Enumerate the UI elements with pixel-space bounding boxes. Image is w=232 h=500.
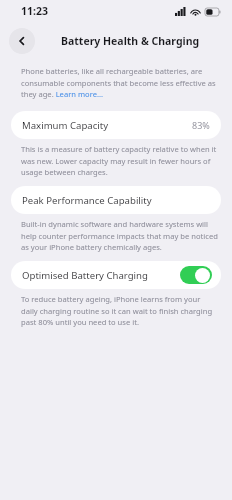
staticText: Phone batteries, like all rechargeable b… <box>21 66 218 99</box>
staticText: Maximum Capacity <box>22 119 109 132</box>
staticText: 83% <box>192 119 210 131</box>
staticText: 11:23 <box>21 4 48 18</box>
staticText: This is a measure of battery capacity re… <box>21 144 218 177</box>
staticText: Optimised Battery Charging <box>22 269 148 282</box>
button[interactable]: Peak Performance Capability <box>11 186 221 214</box>
staticText: Battery Health & Charging <box>61 34 200 48</box>
button[interactable]: Optimised Battery Charging <box>11 261 221 289</box>
button[interactable]: Optimised Battery Charging toggle <box>180 266 212 284</box>
button[interactable]: Back <box>9 28 35 54</box>
button[interactable]: Maximum Capacity <box>11 111 221 139</box>
staticText: To reduce battery ageing, iPhone learns … <box>21 294 218 327</box>
staticText: Peak Performance Capability <box>22 194 152 207</box>
staticText: Built-in dynamic software and hardware s… <box>21 219 218 252</box>
